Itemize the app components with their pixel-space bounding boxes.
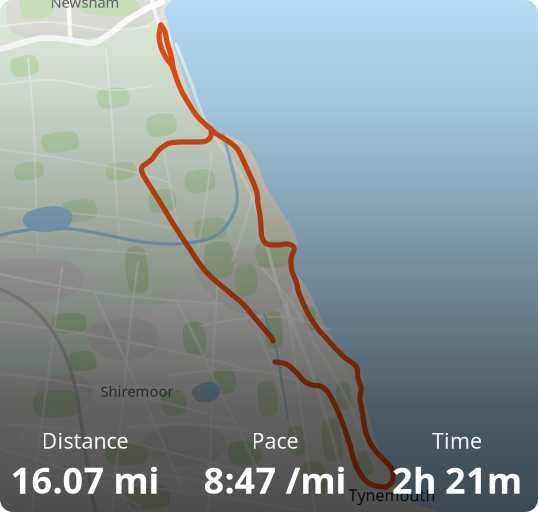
staticText: 16.07 mi [10, 456, 159, 504]
staticText: 8:47 /mi [203, 456, 346, 504]
staticText: Pace [251, 426, 298, 455]
staticText: 2h 21m [392, 456, 522, 504]
staticText: Shiremoor [100, 381, 173, 401]
staticText: Tynemouth [348, 484, 435, 506]
staticText: Time [432, 426, 482, 455]
staticText: Newsham [50, 0, 119, 12]
staticText: Distance [41, 426, 128, 455]
